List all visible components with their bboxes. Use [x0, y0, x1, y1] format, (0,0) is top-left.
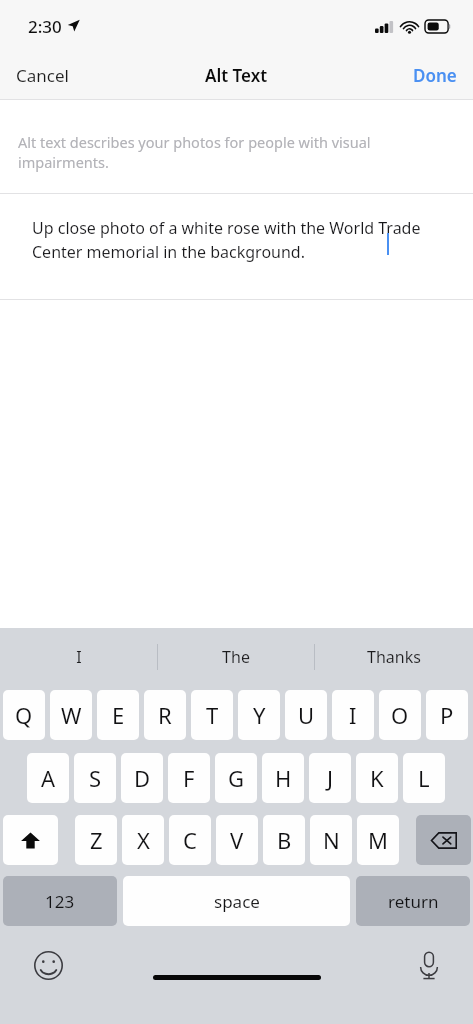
button[interactable]: V — [216, 815, 258, 865]
button[interactable]: return — [356, 876, 470, 926]
staticText: P — [440, 700, 454, 730]
staticText: 123 — [45, 890, 75, 913]
button[interactable]: S — [74, 753, 116, 803]
button[interactable]: Emoji keyboard — [30, 947, 66, 983]
staticText: V — [230, 825, 244, 855]
button[interactable]: 123 — [3, 876, 117, 926]
staticText: J — [327, 763, 334, 793]
button[interactable]: Done — [397, 56, 473, 95]
button[interactable]: N — [310, 815, 352, 865]
button[interactable]: space — [123, 876, 350, 926]
button[interactable]: Z — [75, 815, 117, 865]
staticText: A — [41, 763, 56, 793]
staticText: L — [418, 763, 430, 793]
staticText: G — [228, 763, 245, 793]
button[interactable]: X — [122, 815, 164, 865]
button[interactable]: T — [191, 690, 233, 740]
staticText: S — [89, 763, 102, 793]
staticText: H — [275, 763, 292, 793]
button[interactable]: H — [262, 753, 304, 803]
button[interactable]: Up close photo of a white rose with the … — [0, 194, 473, 299]
button[interactable]: E — [97, 690, 139, 740]
staticText: 2:30 — [28, 15, 62, 38]
button[interactable]: M — [357, 815, 399, 865]
button[interactable]: I — [332, 690, 374, 740]
button[interactable]: Backspace — [416, 815, 471, 865]
staticText: Q — [15, 700, 33, 730]
button[interactable]: K — [356, 753, 398, 803]
button[interactable]: O — [379, 690, 421, 740]
staticText: D — [134, 763, 151, 793]
staticText: Up close photo of a white rose with the … — [32, 217, 455, 263]
staticText: Z — [90, 825, 103, 855]
staticText: M — [368, 825, 388, 855]
button[interactable]: R — [144, 690, 186, 740]
button[interactable]: J — [309, 753, 351, 803]
staticText: Y — [253, 700, 266, 730]
button[interactable]: I — [0, 628, 157, 686]
staticText: F — [183, 763, 195, 793]
button[interactable]: Cancel — [0, 56, 85, 95]
button[interactable]: A — [27, 753, 69, 803]
button[interactable]: Thanks — [315, 628, 473, 686]
button[interactable]: Shift — [3, 815, 58, 865]
button[interactable]: P — [426, 690, 468, 740]
button[interactable]: L — [403, 753, 445, 803]
staticText: I — [76, 646, 82, 668]
staticText: return — [388, 890, 439, 913]
button[interactable]: C — [169, 815, 211, 865]
button[interactable]: G — [215, 753, 257, 803]
button[interactable]: Dictation — [411, 947, 447, 983]
staticText: Cancel — [16, 64, 69, 87]
staticText: space — [214, 890, 260, 913]
staticText: B — [277, 825, 292, 855]
staticText: K — [370, 763, 384, 793]
button[interactable]: U — [285, 690, 327, 740]
staticText: C — [183, 825, 197, 855]
staticText: X — [137, 825, 150, 855]
staticText: W — [61, 700, 82, 730]
staticText: Alt text describes your photos for peopl… — [18, 132, 399, 173]
button[interactable]: The — [157, 628, 315, 686]
staticText: The — [222, 646, 250, 668]
staticText: U — [298, 700, 315, 730]
button[interactable]: F — [168, 753, 210, 803]
staticText: R — [158, 700, 172, 730]
staticText: Thanks — [367, 646, 421, 668]
staticText: Alt Text — [205, 64, 268, 87]
button[interactable]: W — [50, 690, 92, 740]
staticText: N — [323, 825, 340, 855]
button[interactable]: Y — [238, 690, 280, 740]
button[interactable]: D — [121, 753, 163, 803]
button[interactable]: Q — [3, 690, 45, 740]
staticText: I — [349, 700, 357, 730]
staticText: Done — [413, 64, 457, 87]
staticText: E — [112, 700, 125, 730]
staticText: O — [391, 700, 409, 730]
button[interactable]: B — [263, 815, 305, 865]
staticText: T — [206, 700, 219, 730]
